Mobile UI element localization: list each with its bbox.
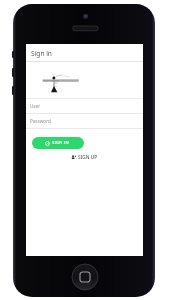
staticText: SIGN IN [52, 140, 69, 146]
button[interactable]: User [26, 99, 143, 113]
staticText: SIGN UP [78, 154, 98, 161]
button[interactable]: SIGN UP [71, 154, 98, 161]
button[interactable]: SIGN IN [32, 137, 84, 149]
staticText: User [30, 103, 41, 109]
staticText: Sign in [31, 49, 52, 58]
staticText: Password [30, 118, 51, 124]
button[interactable]: Home [71, 263, 99, 291]
button[interactable]: Password [26, 114, 143, 128]
